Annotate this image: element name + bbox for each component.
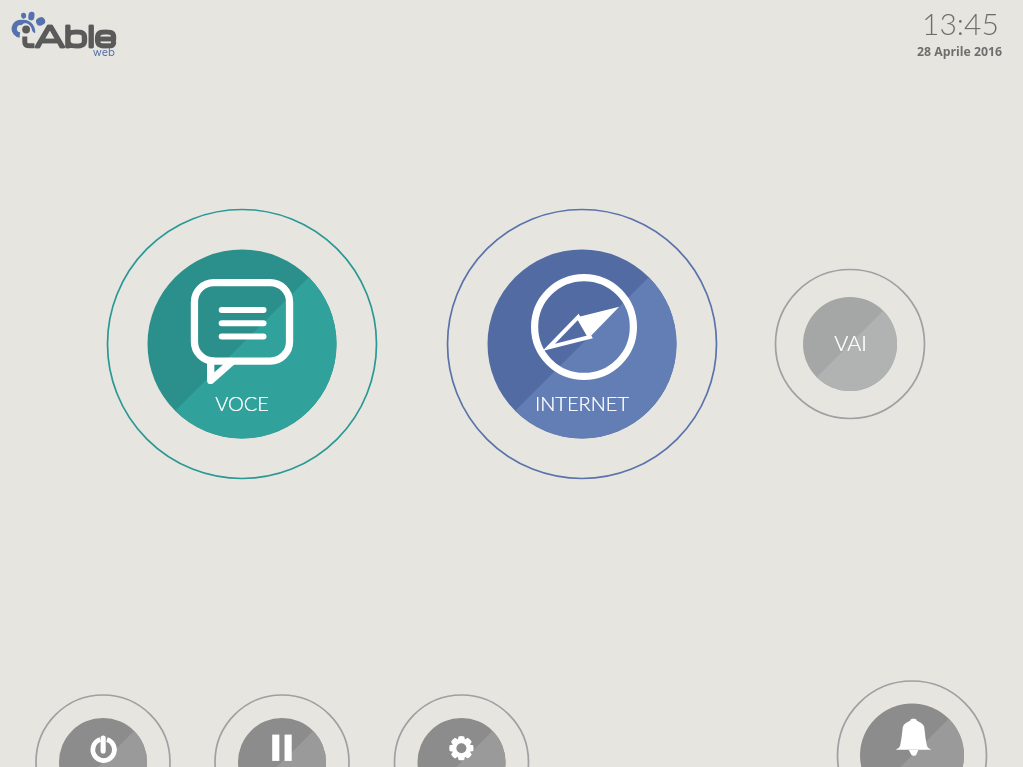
staticText: web [93, 45, 115, 59]
button[interactable]: Vai [776, 270, 925, 419]
staticText: 13:45 [922, 5, 999, 41]
staticText: VOCE [215, 391, 269, 415]
staticText: 28 Aprile 2016 [917, 43, 1003, 60]
staticText: VAI [834, 330, 867, 356]
button[interactable]: Internet [448, 210, 717, 479]
staticText: Able [35, 15, 117, 55]
staticText: Able [35, 15, 117, 55]
button[interactable]: Spegni [36, 695, 170, 767]
button[interactable]: Notifiche [838, 681, 987, 767]
button[interactable]: Impostazioni [395, 695, 529, 767]
staticText: INTERNET [535, 391, 629, 415]
button[interactable]: Pausa [215, 695, 349, 767]
button[interactable]: Voce [108, 210, 377, 479]
